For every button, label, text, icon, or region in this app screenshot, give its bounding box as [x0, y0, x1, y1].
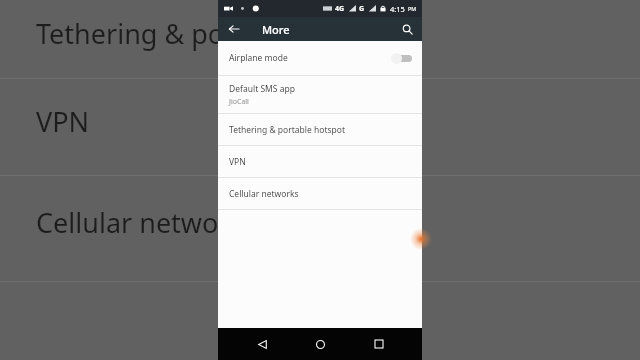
staticText: G [359, 4, 365, 14]
staticText: Tethering & portable hotspot [229, 124, 345, 136]
staticText: Airplane mode [229, 52, 288, 64]
button[interactable]: Back [247, 329, 277, 359]
button[interactable]: Search [392, 17, 422, 41]
staticText: VPN [36, 103, 90, 140]
staticText: Cellular networ [36, 204, 230, 241]
button[interactable]: Airplane mode [218, 41, 422, 75]
staticText: 4G [335, 4, 345, 14]
staticText: Default SMS app [229, 83, 295, 95]
staticText: PM [408, 5, 417, 12]
staticText: 4:15 [390, 4, 405, 14]
button[interactable]: Navigate up [218, 17, 250, 41]
button[interactable]: Home [305, 329, 335, 359]
staticText: More [262, 22, 290, 37]
button[interactable]: Cellular networks [218, 178, 422, 209]
button[interactable]: Tethering & portable hotspot [218, 114, 422, 145]
staticText: JioCall [229, 97, 249, 107]
button[interactable]: Recent apps [364, 329, 394, 359]
staticText: Tethering & por [36, 15, 236, 52]
button[interactable]: Default SMS app [218, 76, 422, 113]
staticText: Cellular networks [229, 188, 299, 200]
staticText: VPN [229, 156, 246, 168]
button[interactable]: VPN [218, 146, 422, 177]
